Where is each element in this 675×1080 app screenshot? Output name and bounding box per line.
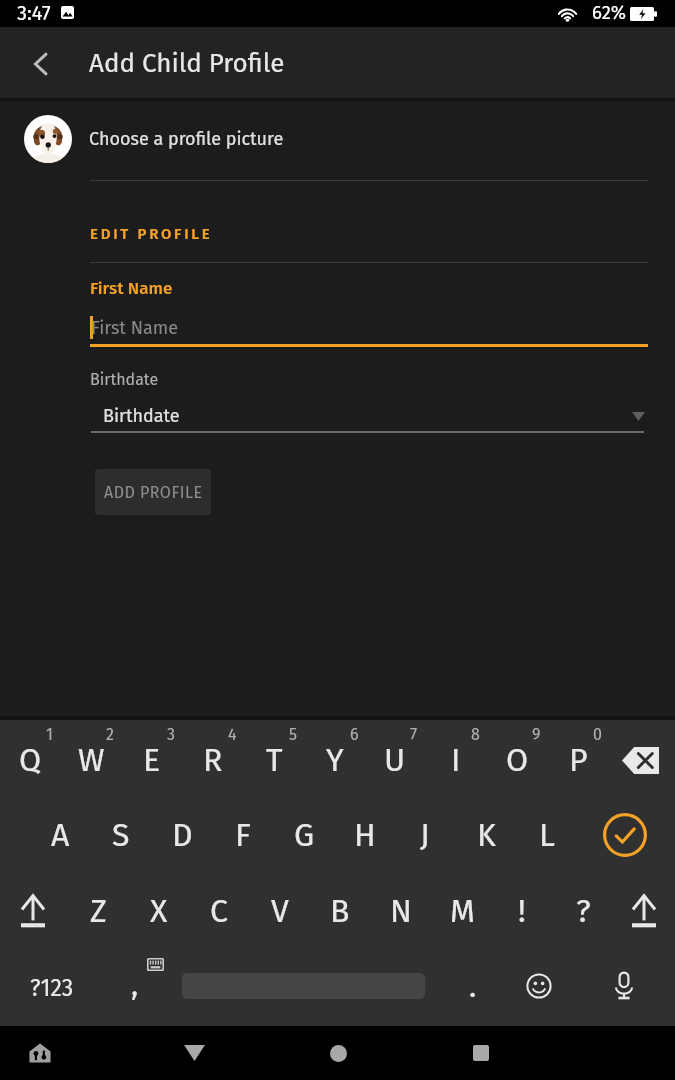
button[interactable]: D [152, 809, 212, 861]
staticText: O [506, 741, 529, 779]
button[interactable]: P [548, 734, 608, 786]
staticText: 8 [471, 725, 480, 744]
staticText: Z [90, 892, 107, 930]
staticText: Choose a profile picture [89, 128, 284, 150]
staticText: Q [19, 741, 42, 779]
button[interactable]: Q [0, 734, 60, 786]
button[interactable]: B [310, 885, 370, 937]
button[interactable]: H [335, 809, 395, 861]
staticText: 2 [106, 725, 114, 744]
staticText: I [451, 741, 461, 779]
button[interactable]: S [91, 809, 151, 861]
button[interactable]: L [517, 809, 577, 861]
button[interactable]: Period [448, 962, 498, 1012]
button[interactable]: Z [68, 885, 128, 937]
staticText: 4 [228, 725, 237, 744]
button[interactable]: A [30, 809, 90, 861]
button[interactable]: ! [492, 885, 552, 937]
staticText: U [384, 741, 406, 779]
staticText: . [469, 969, 477, 1005]
staticText: N [390, 892, 412, 930]
staticText: F [235, 816, 251, 854]
staticText: W [78, 741, 105, 779]
button[interactable]: ? [553, 885, 613, 937]
button[interactable]: First Name [90, 272, 648, 347]
staticText: Add Child Profile [89, 48, 285, 79]
staticText: 1 [46, 725, 53, 744]
button[interactable]: Y [305, 734, 365, 786]
button[interactable]: ?123 [22, 963, 82, 1013]
button[interactable]: Home [314, 1038, 362, 1068]
button[interactable]: X [129, 885, 189, 937]
staticText: A [51, 816, 70, 854]
button[interactable]: N [371, 885, 431, 937]
staticText: 6 [350, 725, 359, 744]
staticText: 62% [592, 2, 627, 24]
button[interactable]: Back [170, 1038, 218, 1068]
staticText: M [450, 892, 475, 930]
button[interactable]: Voice input [599, 961, 649, 1011]
staticText: H [354, 816, 376, 854]
button[interactable]: I [426, 734, 486, 786]
button[interactable]: Home screen [14, 1040, 66, 1066]
staticText: 0 [593, 725, 602, 744]
staticText: L [539, 816, 555, 854]
staticText: 3:47 [17, 1, 51, 25]
button[interactable]: E [122, 734, 182, 786]
button[interactable]: Emoji [514, 961, 564, 1011]
staticText: ! [518, 892, 526, 930]
staticText: 7 [410, 725, 418, 744]
button[interactable]: W [61, 734, 121, 786]
button[interactable]: O [487, 734, 547, 786]
staticText: K [477, 816, 496, 854]
staticText: E [143, 741, 161, 779]
staticText: First Name [91, 317, 178, 339]
button[interactable]: U [365, 734, 425, 786]
button[interactable]: ADD PROFILE [95, 469, 211, 515]
button[interactable]: F [213, 809, 273, 861]
staticText: C [210, 892, 228, 930]
staticText: T [266, 741, 283, 779]
button[interactable]: V [250, 885, 310, 937]
staticText: S [112, 816, 130, 854]
button[interactable]: G [274, 809, 334, 861]
staticText: G [294, 816, 315, 854]
staticText: Birthdate [103, 405, 180, 427]
staticText: B [330, 892, 350, 930]
staticText: First Name [90, 278, 173, 298]
staticText: X [150, 892, 168, 930]
staticText: ADD PROFILE [104, 483, 203, 502]
button[interactable]: Enter [596, 809, 654, 861]
staticText: V [271, 892, 289, 930]
staticText: 3 [167, 725, 175, 744]
staticText: EDIT PROFILE [90, 225, 213, 243]
button[interactable]: T [244, 734, 304, 786]
staticText: 9 [532, 725, 541, 744]
staticText: Y [326, 741, 344, 779]
button[interactable]: R [183, 734, 243, 786]
staticText: J [420, 816, 430, 854]
staticText: Birthdate [90, 370, 159, 389]
button[interactable]: Comma [109, 957, 161, 1013]
button[interactable]: Recents [457, 1038, 505, 1068]
button[interactable]: J [395, 809, 455, 861]
button[interactable]: Shift [3, 885, 63, 937]
button[interactable]: Choose a profile picture [0, 105, 675, 173]
staticText: 5 [289, 725, 298, 744]
button[interactable]: K [456, 809, 516, 861]
staticText: ?123 [30, 974, 74, 1002]
button[interactable]: Birthdate [90, 364, 648, 433]
staticText: R [203, 741, 223, 779]
staticText: , [131, 967, 139, 1003]
button[interactable]: Back [17, 41, 62, 86]
button[interactable]: M [432, 885, 492, 937]
staticText: ? [576, 892, 591, 930]
staticText: D [172, 816, 193, 854]
button[interactable]: Backspace [611, 732, 670, 788]
staticText: P [569, 741, 588, 779]
button[interactable]: C [189, 885, 249, 937]
button[interactable]: Shift right [614, 885, 674, 937]
